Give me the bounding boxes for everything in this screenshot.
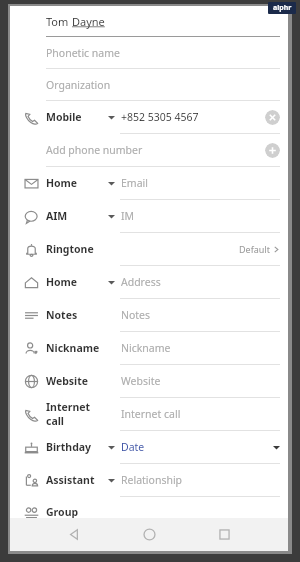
staticText: Email — [121, 176, 148, 190]
other: Email — [23, 175, 40, 192]
other: Phone — [23, 109, 40, 126]
other: Nickname — [23, 340, 40, 357]
button[interactable]: Recent apps — [187, 518, 262, 551]
button[interactable]: Remove phone number — [265, 110, 280, 125]
button[interactable]: Add phone number — [10, 134, 288, 166]
staticText: Address — [121, 275, 161, 289]
other: Group — [23, 504, 40, 521]
staticText: Tom — [46, 14, 72, 29]
button[interactable]: Nickname — [10, 332, 288, 364]
button[interactable]: Back — [36, 518, 112, 551]
button[interactable]: Instant message — [10, 200, 288, 232]
staticText: Add phone number — [46, 143, 143, 157]
other: Assistant — [23, 472, 40, 489]
staticText: Assistant — [46, 473, 95, 487]
staticText: alphr — [273, 3, 292, 13]
button[interactable]: Group — [10, 497, 288, 527]
staticText: Ringtone — [46, 242, 94, 256]
staticText: +852 5305 4567 — [121, 110, 199, 124]
button[interactable]: Website — [10, 365, 288, 397]
staticText: Internet call — [121, 407, 181, 421]
staticText: Notes — [121, 308, 151, 322]
button[interactable]: Birthday — [10, 431, 288, 463]
button[interactable]: Home — [112, 518, 187, 551]
staticText: Website — [121, 374, 161, 388]
staticText: Birthday — [46, 440, 92, 454]
staticText: Nickname — [46, 341, 100, 355]
other: Notes — [23, 307, 40, 324]
other: Website — [23, 373, 40, 390]
button[interactable]: Email — [10, 167, 288, 199]
staticText: Home — [46, 275, 78, 289]
staticText: Mobile — [46, 110, 82, 124]
staticText: Group — [46, 505, 79, 519]
staticText: Nickname — [121, 341, 171, 355]
button[interactable]: Internet call — [10, 398, 288, 430]
other: Instant message — [23, 208, 40, 225]
other: Address — [23, 274, 40, 291]
staticText: Organization — [46, 78, 111, 92]
button[interactable]: Tom — [10, 6, 288, 36]
staticText: AIM — [46, 209, 68, 223]
other: Birthday — [23, 439, 40, 456]
button[interactable]: Ringtone — [10, 233, 288, 265]
button[interactable]: Notes — [10, 299, 288, 331]
button[interactable]: Add phone number — [265, 143, 280, 158]
other: Ringtone — [23, 241, 40, 258]
staticText: Date — [121, 440, 145, 454]
staticText: Phonetic name — [46, 46, 120, 60]
button[interactable]: Assistant — [10, 464, 288, 496]
staticText: IM — [121, 209, 135, 223]
button[interactable]: Organization — [10, 69, 288, 100]
staticText: Website — [46, 374, 89, 388]
button[interactable]: Phone — [10, 101, 288, 133]
staticText: Default — [239, 243, 270, 255]
staticText: Dayne — [72, 14, 105, 29]
button[interactable]: Phonetic name — [10, 37, 288, 68]
staticText: Internet call — [46, 400, 108, 428]
button[interactable]: Address — [10, 266, 288, 298]
other: Internet call — [23, 406, 40, 423]
staticText: Notes — [46, 308, 78, 322]
staticText: Relationship — [121, 473, 183, 487]
staticText: Home — [46, 176, 78, 190]
